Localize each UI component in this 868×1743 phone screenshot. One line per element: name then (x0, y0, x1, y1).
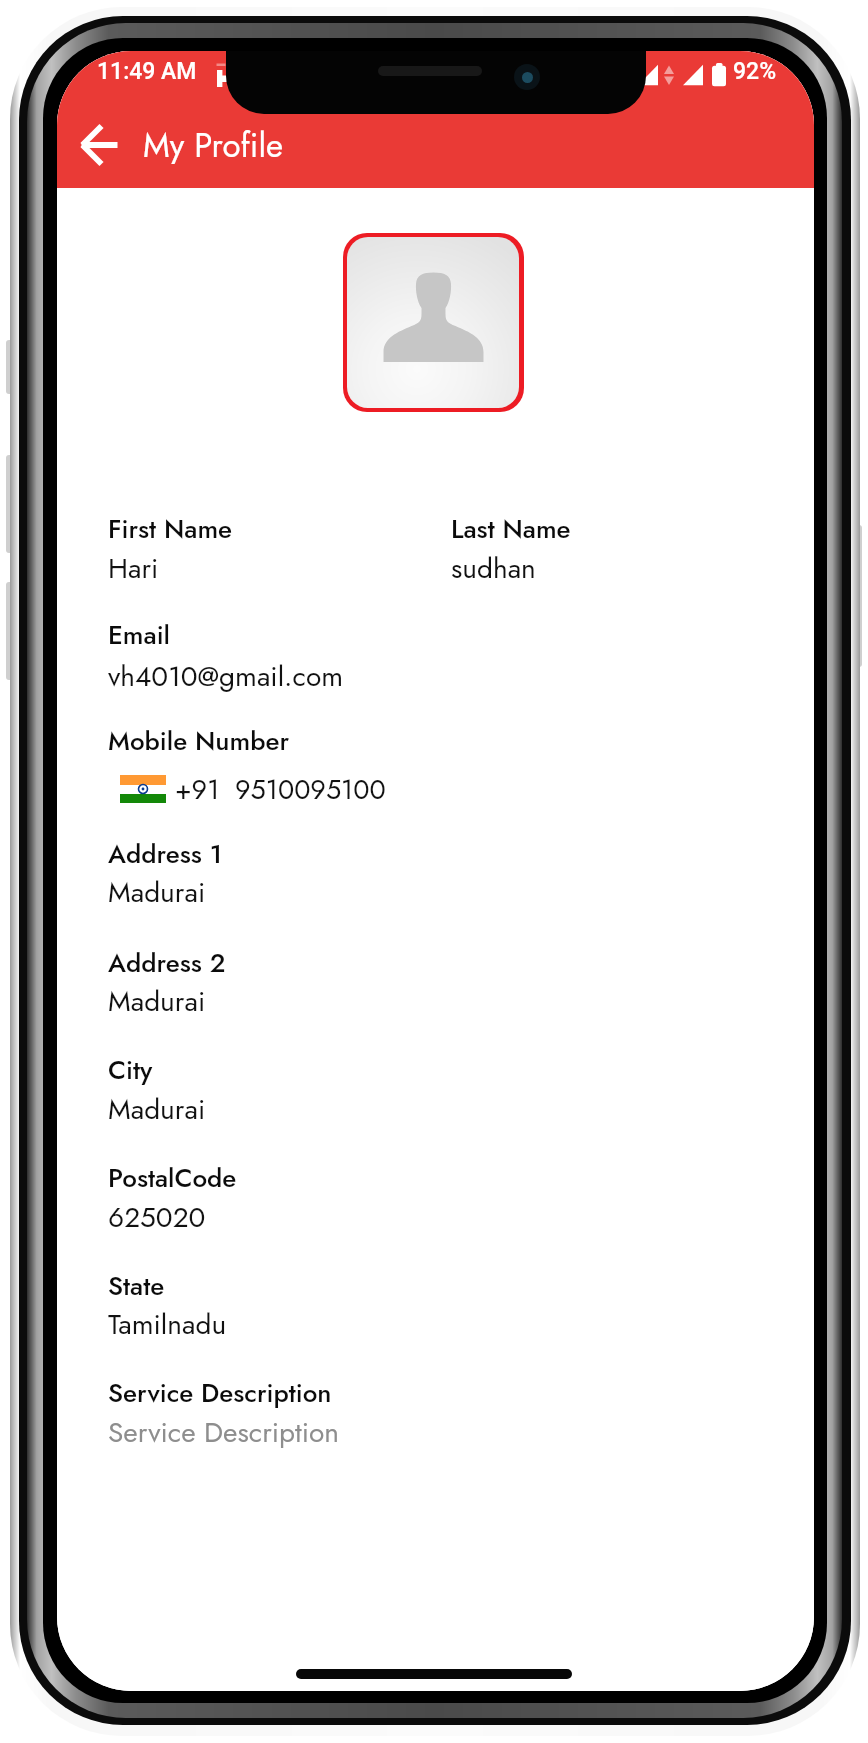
staticText: City (108, 1051, 153, 1089)
staticText: 92% (733, 58, 777, 85)
staticText: State (108, 1267, 165, 1305)
staticText: Madurai (108, 1089, 206, 1129)
staticText: Address 1 (108, 835, 222, 873)
staticText: Mobile Number (108, 722, 290, 760)
staticText: Email (108, 616, 170, 654)
staticText: Address 2 (108, 944, 226, 982)
staticText: Tamilnadu (108, 1304, 227, 1344)
staticText: PostalCode (108, 1159, 237, 1197)
staticText: Service Description (108, 1374, 332, 1412)
staticText: sudhan (451, 548, 536, 588)
staticText: First Name (108, 510, 233, 548)
staticText: Last Name (451, 510, 571, 548)
staticText: vh4010@gmail.com (108, 656, 344, 696)
staticText: +91 (175, 770, 220, 809)
staticText: 625020 (108, 1197, 206, 1237)
staticText: Madurai (108, 872, 206, 912)
staticText: Madurai (108, 981, 206, 1021)
staticText: Service Description (108, 1412, 339, 1452)
staticText: My Profile (143, 122, 284, 170)
button[interactable]: Profile photo (343, 233, 524, 412)
button[interactable]: Back (74, 120, 124, 170)
staticText: 9510095100 (235, 770, 386, 809)
staticText: 11:49 AM (97, 58, 197, 85)
staticText: Hari (108, 548, 159, 588)
